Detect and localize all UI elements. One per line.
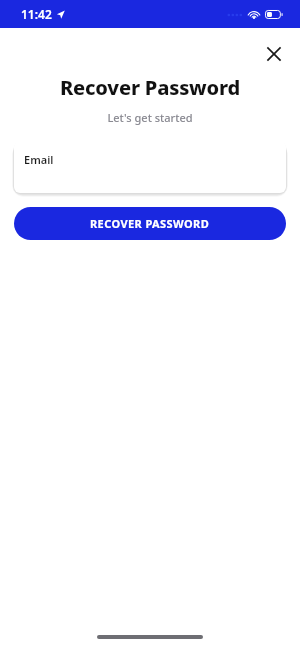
button[interactable]: Email	[14, 141, 286, 193]
staticText: Recover Password	[0, 74, 300, 101]
staticText: 11:42	[21, 6, 52, 22]
staticText: Let's get started	[0, 110, 300, 125]
staticText: RECOVER PASSWORD	[90, 216, 210, 231]
staticText: Email	[24, 152, 54, 167]
button[interactable]: Close	[261, 41, 287, 67]
button[interactable]: RECOVER PASSWORD	[14, 207, 286, 240]
